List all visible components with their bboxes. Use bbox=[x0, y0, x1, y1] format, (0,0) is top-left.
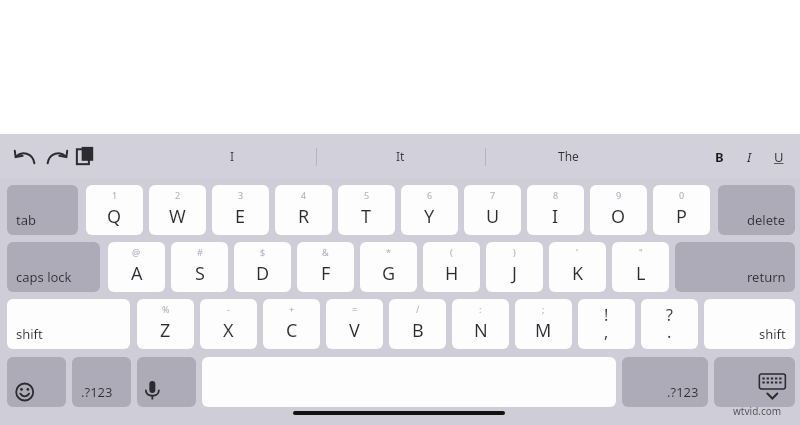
staticText: I bbox=[552, 204, 559, 229]
staticText: 7 bbox=[490, 189, 496, 201]
staticText: " bbox=[639, 246, 643, 258]
staticText: K bbox=[572, 261, 584, 286]
button[interactable]: 5 bbox=[338, 185, 395, 235]
button[interactable]: " bbox=[612, 242, 669, 292]
button[interactable]: 0 bbox=[653, 185, 710, 235]
button[interactable]: 3 bbox=[212, 185, 269, 235]
staticText: / bbox=[416, 303, 420, 315]
staticText: caps lock bbox=[16, 268, 72, 286]
button[interactable]: ; bbox=[515, 299, 572, 349]
staticText: .?123 bbox=[81, 383, 113, 401]
staticText: D bbox=[256, 261, 270, 286]
staticText: 0 bbox=[679, 189, 685, 201]
button[interactable]: ' bbox=[549, 242, 606, 292]
button[interactable]: It bbox=[340, 142, 460, 170]
button[interactable]: - bbox=[200, 299, 257, 349]
staticText: & bbox=[322, 246, 329, 258]
button[interactable]: U bbox=[768, 145, 790, 169]
staticText: U bbox=[486, 204, 500, 229]
button[interactable]: shift bbox=[704, 299, 795, 349]
button[interactable]: : bbox=[452, 299, 509, 349]
staticText: % bbox=[162, 303, 170, 315]
staticText: I bbox=[230, 148, 235, 164]
staticText: wtvid.com bbox=[733, 404, 782, 418]
staticText: E bbox=[235, 204, 246, 229]
button[interactable]: Emoji bbox=[7, 357, 66, 407]
button[interactable]: * bbox=[360, 242, 417, 292]
staticText: 4 bbox=[301, 189, 307, 201]
button[interactable]: 9 bbox=[590, 185, 647, 235]
staticText: U bbox=[774, 148, 784, 166]
staticText: F bbox=[321, 261, 331, 286]
staticText: H bbox=[445, 261, 459, 286]
staticText: O bbox=[611, 204, 626, 229]
staticText: ( bbox=[450, 246, 453, 258]
staticText: X bbox=[223, 318, 234, 343]
button[interactable]: ? bbox=[641, 299, 698, 349]
staticText: return bbox=[747, 268, 786, 286]
button[interactable]: Redo bbox=[42, 145, 70, 169]
staticText: Z bbox=[160, 318, 171, 343]
staticText: $ bbox=[260, 246, 266, 258]
staticText: # bbox=[197, 246, 203, 258]
button[interactable]: ) bbox=[486, 242, 543, 292]
staticText: tab bbox=[16, 211, 36, 229]
staticText: 9 bbox=[616, 189, 622, 201]
staticText: : bbox=[479, 303, 482, 315]
button[interactable]: 7 bbox=[464, 185, 521, 235]
staticText: , bbox=[604, 321, 609, 343]
staticText: R bbox=[298, 204, 310, 229]
button[interactable]: ( bbox=[423, 242, 480, 292]
staticText: The bbox=[558, 148, 579, 164]
staticText: 1 bbox=[112, 189, 118, 201]
button[interactable]: The bbox=[508, 142, 628, 170]
staticText: 3 bbox=[238, 189, 244, 201]
staticText: ; bbox=[542, 303, 545, 315]
staticText: P bbox=[676, 204, 687, 229]
staticText: W bbox=[169, 204, 186, 229]
button[interactable]: caps lock bbox=[7, 242, 100, 292]
button[interactable]: Paste bbox=[74, 144, 98, 168]
button[interactable]: % bbox=[137, 299, 194, 349]
staticText: C bbox=[286, 318, 298, 343]
button[interactable]: .?123 bbox=[622, 357, 708, 407]
button[interactable]: $ bbox=[234, 242, 291, 292]
staticText: . bbox=[667, 321, 672, 343]
button[interactable]: & bbox=[297, 242, 354, 292]
button[interactable]: shift bbox=[7, 299, 130, 349]
button[interactable]: .?123 bbox=[72, 357, 131, 407]
button[interactable]: Hide keyboard bbox=[714, 357, 795, 407]
staticText: shift bbox=[759, 325, 786, 343]
button[interactable]: Undo bbox=[12, 145, 40, 169]
button[interactable]: + bbox=[263, 299, 320, 349]
staticText: I bbox=[747, 148, 752, 166]
button[interactable]: Dictation bbox=[137, 357, 196, 407]
button[interactable]: I bbox=[738, 145, 760, 169]
button[interactable]: # bbox=[171, 242, 228, 292]
staticText: 6 bbox=[427, 189, 433, 201]
staticText: - bbox=[227, 303, 230, 315]
button[interactable]: tab bbox=[7, 185, 78, 235]
staticText: 8 bbox=[553, 189, 559, 201]
staticText: Q bbox=[107, 204, 122, 229]
staticText: N bbox=[474, 318, 488, 343]
button[interactable]: = bbox=[326, 299, 383, 349]
button[interactable]: return bbox=[675, 242, 795, 292]
staticText: 2 bbox=[175, 189, 181, 201]
button[interactable]: 4 bbox=[275, 185, 332, 235]
button[interactable]: 1 bbox=[86, 185, 143, 235]
staticText: J bbox=[512, 261, 517, 286]
button[interactable]: 2 bbox=[149, 185, 206, 235]
staticText: + bbox=[289, 303, 295, 315]
button[interactable]: / bbox=[389, 299, 446, 349]
button[interactable]: 8 bbox=[527, 185, 584, 235]
button[interactable]: @ bbox=[108, 242, 165, 292]
button[interactable]: delete bbox=[718, 185, 795, 235]
button[interactable]: 6 bbox=[401, 185, 458, 235]
button[interactable]: ! bbox=[578, 299, 635, 349]
button[interactable]: B bbox=[708, 145, 730, 169]
button[interactable]: I bbox=[172, 142, 292, 170]
staticText: V bbox=[349, 318, 360, 343]
staticText: @ bbox=[132, 246, 141, 258]
